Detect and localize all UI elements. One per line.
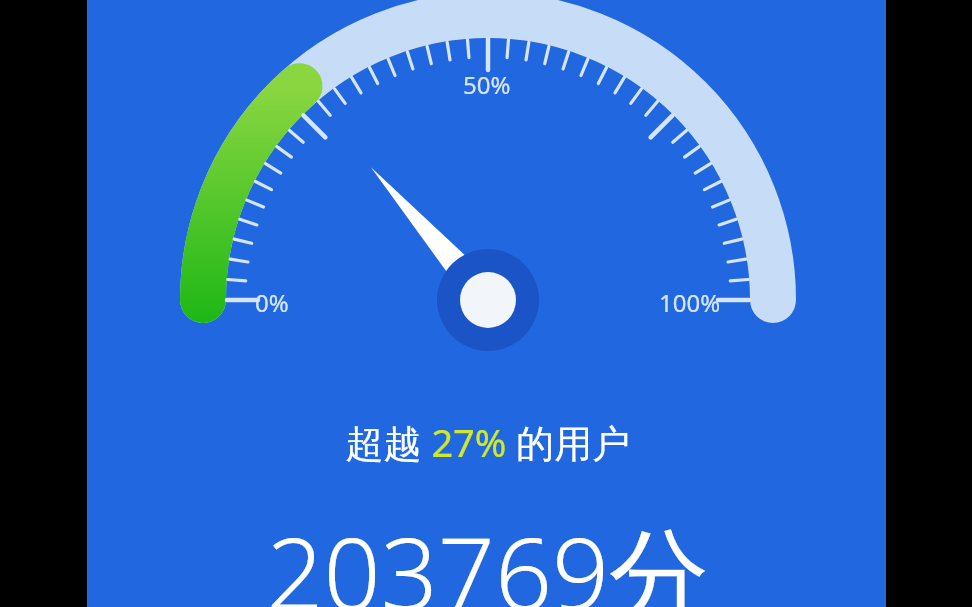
button[interactable]: Score gauge, 203769 points, better than … [0,0,972,607]
